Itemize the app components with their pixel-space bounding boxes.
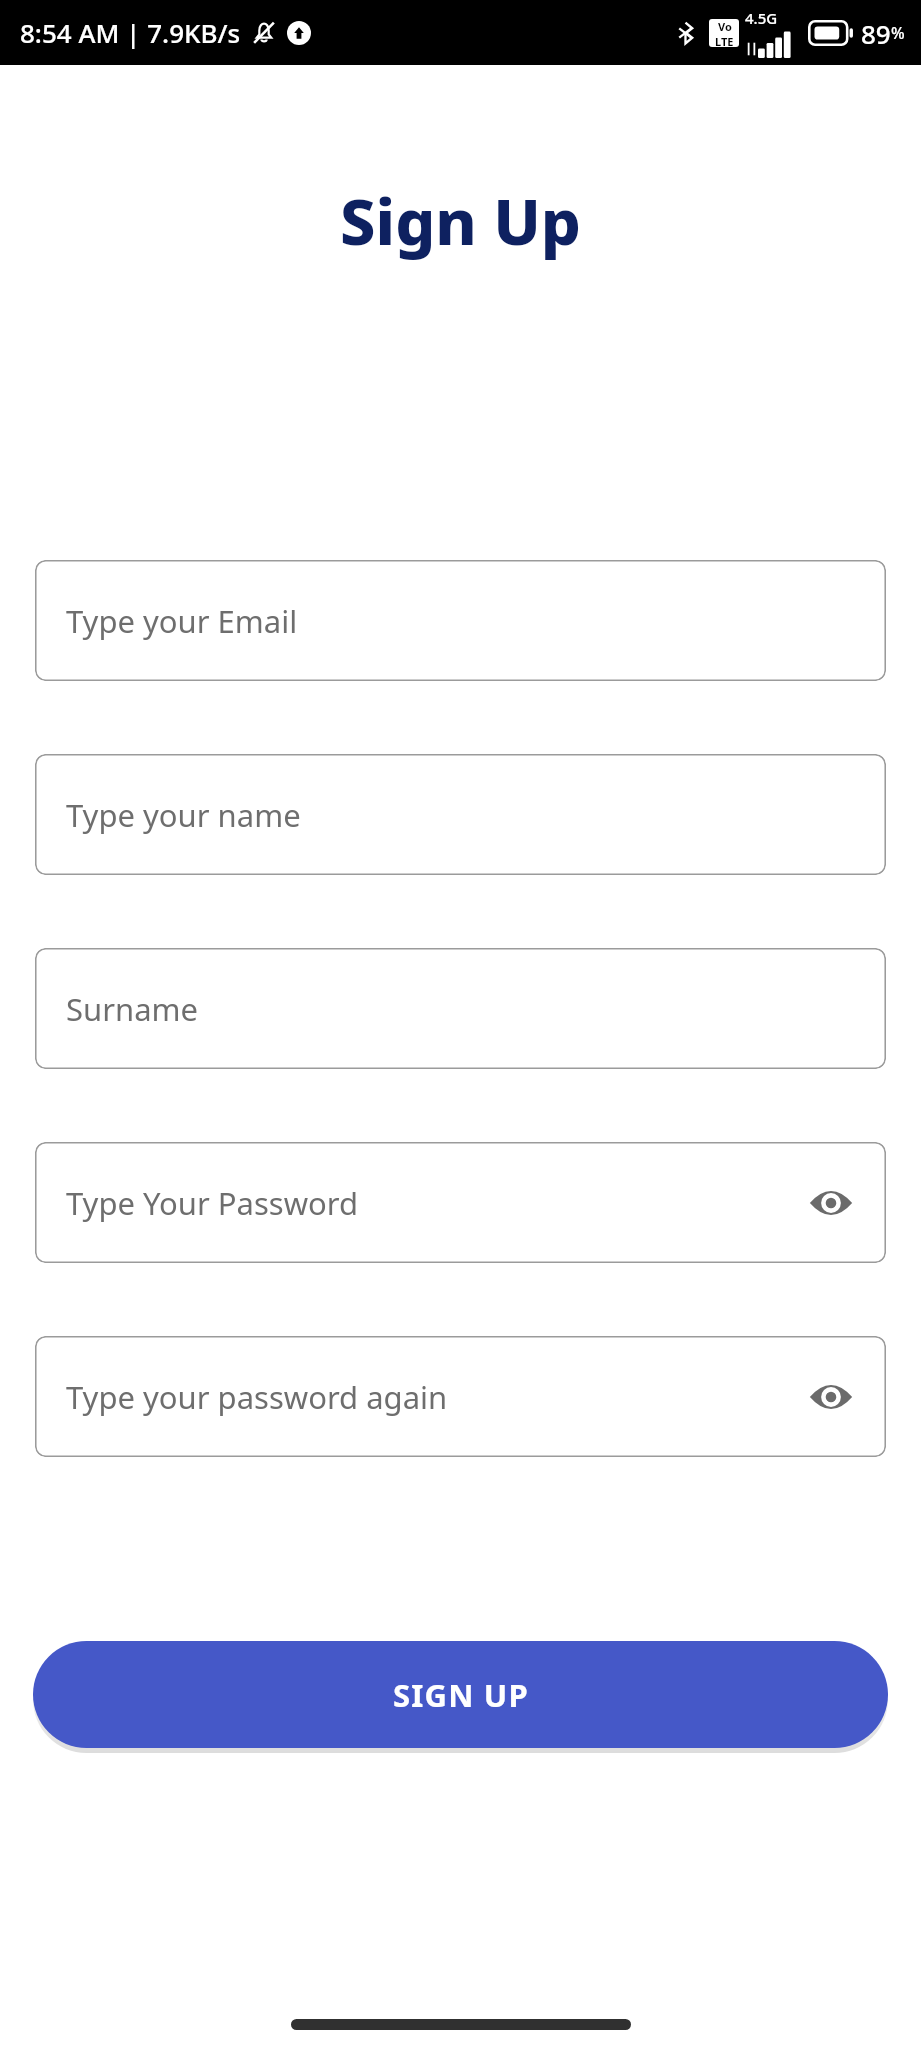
button[interactable]: Type Your Password <box>35 1142 886 1263</box>
staticText: 8:54 AM | 7.9KB/s <box>20 15 241 50</box>
other: Silent mode <box>251 20 277 46</box>
staticText: Type your password again <box>66 1376 448 1418</box>
staticText: Surname <box>66 988 198 1030</box>
staticText: SIGN UP <box>393 1674 529 1716</box>
staticText: 4.5G <box>745 8 778 28</box>
button[interactable]: Type your Email <box>35 560 886 681</box>
staticText: Vo <box>718 19 732 34</box>
staticText: Type your name <box>66 794 301 836</box>
button[interactable]: Type your name <box>35 754 886 875</box>
staticText: % <box>891 22 905 44</box>
button[interactable]: Type your password again <box>35 1336 886 1457</box>
staticText: Sign Up <box>340 178 581 264</box>
staticText: Type your Email <box>66 600 298 642</box>
staticText: Type Your Password <box>66 1182 359 1224</box>
button[interactable]: SIGN UP <box>33 1641 888 1748</box>
button[interactable]: Surname <box>35 948 886 1069</box>
staticText: 89 <box>861 16 891 51</box>
button[interactable]: Show password <box>804 1176 858 1230</box>
other: Upload <box>287 21 311 45</box>
button[interactable]: Show password <box>804 1370 858 1424</box>
staticText: LTE <box>715 34 734 47</box>
